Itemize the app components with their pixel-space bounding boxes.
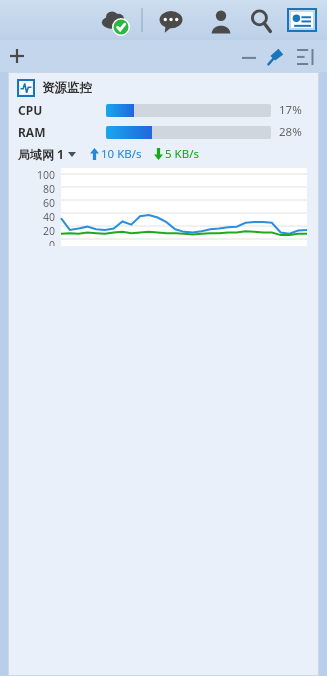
staticText: 20	[43, 224, 56, 238]
button[interactable]: Account	[208, 8, 234, 34]
button[interactable]: Status	[100, 6, 130, 36]
staticText: 10 KB/s	[101, 146, 142, 162]
staticText: 5 KB/s	[165, 146, 199, 162]
button[interactable]: Pin	[266, 46, 286, 66]
button[interactable]: Add	[8, 47, 26, 65]
staticText: 60	[43, 196, 56, 210]
staticText: 40	[43, 210, 56, 224]
staticText: 100	[37, 168, 56, 182]
staticText: RAM	[18, 124, 46, 140]
button[interactable]: Widgets	[288, 9, 316, 31]
button[interactable]: Layout	[296, 48, 314, 66]
button[interactable]: Search	[248, 8, 274, 34]
button[interactable]: 局域网 1	[18, 146, 76, 162]
staticText: CPU	[18, 102, 43, 118]
staticText: 0	[49, 238, 56, 246]
staticText: 28%	[279, 124, 302, 140]
staticText: 80	[43, 182, 56, 196]
staticText: 局域网 1	[18, 146, 64, 162]
button[interactable]: Notifications	[158, 8, 184, 34]
staticText: 资源监控	[42, 80, 92, 96]
button[interactable]: Minimize	[240, 48, 258, 66]
staticText: 17%	[279, 102, 302, 118]
